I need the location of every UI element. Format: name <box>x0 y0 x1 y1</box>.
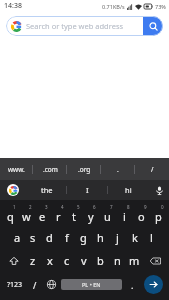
button[interactable]: 3 <box>34 203 50 226</box>
staticText: . <box>117 165 119 174</box>
button[interactable]: x <box>41 249 58 272</box>
staticText: the <box>41 185 53 195</box>
staticText: l <box>150 230 153 245</box>
staticText: 6 <box>93 204 96 210</box>
button[interactable]: / <box>135 158 169 180</box>
staticText: i <box>123 209 126 224</box>
staticText: / <box>151 165 154 174</box>
button[interactable]: Backspace <box>143 249 167 272</box>
button[interactable]: 8 <box>116 203 133 226</box>
staticText: ?123 <box>7 280 23 290</box>
staticText: o <box>138 209 145 224</box>
staticText: k <box>132 230 138 245</box>
staticText: 8 <box>127 204 130 210</box>
staticText: m <box>129 253 140 268</box>
button[interactable]: 4 <box>50 203 66 226</box>
button[interactable]: Google <box>0 180 26 200</box>
button[interactable]: a <box>9 226 25 249</box>
staticText: 14:38 <box>4 1 22 11</box>
staticText: 3 <box>45 204 48 210</box>
staticText: w <box>22 209 31 224</box>
button[interactable]: 9 <box>133 203 150 226</box>
button[interactable]: PL • EN <box>61 279 122 290</box>
staticText: j <box>116 230 119 245</box>
staticText: 2 <box>29 204 32 210</box>
button[interactable]: k <box>126 226 143 249</box>
staticText: u <box>104 209 111 224</box>
staticText: t <box>72 209 76 224</box>
button[interactable]: f <box>58 226 75 249</box>
button[interactable]: Go <box>140 272 167 297</box>
button[interactable]: d <box>41 226 58 249</box>
staticText: Search or type web address <box>26 21 143 31</box>
button[interactable]: 5 <box>66 203 82 226</box>
button[interactable]: . <box>101 158 135 180</box>
button[interactable]: 6 <box>82 203 99 226</box>
button[interactable]: / <box>27 272 43 297</box>
staticText: 9 <box>144 204 147 210</box>
button[interactable]: j <box>109 226 126 249</box>
staticText: g <box>80 230 87 245</box>
staticText: x <box>47 253 53 268</box>
staticText: . <box>131 279 134 291</box>
button[interactable]: Shift <box>2 249 25 272</box>
button[interactable]: Search <box>143 16 163 36</box>
button[interactable]: .org <box>67 158 101 180</box>
button[interactable]: v <box>75 249 92 272</box>
staticText: h <box>97 230 104 245</box>
staticText: f <box>65 230 69 245</box>
staticText: / <box>33 279 37 291</box>
button[interactable]: n <box>109 249 126 272</box>
staticText: www. <box>8 165 25 174</box>
button[interactable]: .com <box>33 158 67 180</box>
button[interactable]: Search or type web address <box>6 16 163 36</box>
staticText: .org <box>78 165 91 174</box>
staticText: PL • EN <box>82 281 101 288</box>
button[interactable]: the <box>26 180 67 200</box>
staticText: n <box>114 253 121 268</box>
button[interactable]: 0 <box>150 203 167 226</box>
staticText: v <box>81 253 87 268</box>
staticText: q <box>7 209 14 224</box>
button[interactable]: 2 <box>18 203 34 226</box>
staticText: z <box>30 253 36 268</box>
staticText: 4 <box>61 204 64 210</box>
button[interactable]: Voice input <box>149 180 169 200</box>
button[interactable]: g <box>75 226 92 249</box>
button[interactable]: b <box>92 249 109 272</box>
button[interactable]: l <box>143 226 160 249</box>
staticText: 73% <box>155 3 166 10</box>
button[interactable]: z <box>25 249 41 272</box>
staticText: p <box>155 209 162 224</box>
staticText: y <box>88 209 94 224</box>
button[interactable]: 1 <box>2 203 18 226</box>
staticText: d <box>46 230 53 245</box>
staticText: c <box>64 253 70 268</box>
button[interactable]: Change language <box>43 272 59 297</box>
staticText: .com <box>43 165 58 174</box>
staticText: r <box>56 209 61 224</box>
button[interactable]: h <box>92 226 109 249</box>
staticText: 7 <box>110 204 113 210</box>
staticText: s <box>30 230 36 245</box>
button[interactable]: . <box>124 272 140 297</box>
staticText: 5 <box>77 204 80 210</box>
staticText: 1 <box>13 204 16 210</box>
button[interactable]: I <box>67 180 108 200</box>
button[interactable]: ?123 <box>2 272 27 297</box>
button[interactable]: c <box>58 249 75 272</box>
button[interactable]: hi <box>108 180 149 200</box>
button[interactable]: www. <box>0 158 33 180</box>
staticText: b <box>97 253 104 268</box>
staticText: e <box>39 209 46 224</box>
button[interactable]: s <box>25 226 41 249</box>
staticText: 0 <box>161 204 164 210</box>
button[interactable]: 7 <box>99 203 116 226</box>
staticText: a <box>14 230 21 245</box>
button[interactable]: m <box>126 249 143 272</box>
staticText: I <box>86 185 89 195</box>
staticText: 0.71KB/s <box>102 3 125 10</box>
staticText: hi <box>125 185 132 195</box>
